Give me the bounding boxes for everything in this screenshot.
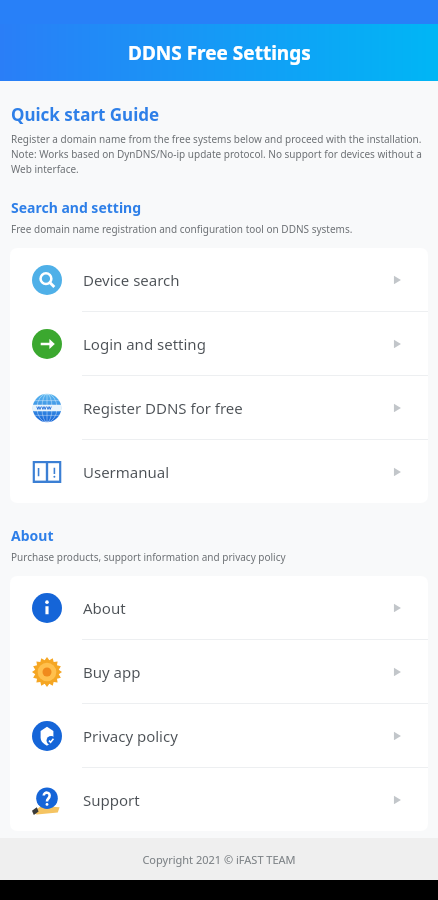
staticText: Support (83, 790, 388, 810)
staticText: Buy app (83, 662, 388, 682)
staticText: Register DDNS for free (83, 398, 388, 418)
button[interactable]: Usermanual (10, 440, 428, 503)
button[interactable]: Device search (10, 248, 428, 311)
staticText: DDNS Free Settings (128, 40, 311, 66)
staticText: Search and setting (11, 198, 142, 217)
staticText: Privacy policy (83, 726, 388, 746)
staticText: Quick start Guide (11, 103, 160, 126)
staticText: Usermanual (83, 462, 388, 482)
staticText: Copyright 2021 © iFAST TEAM (142, 852, 296, 867)
button[interactable]: Login and setting (10, 312, 428, 375)
staticText: Register a domain name from the free sys… (11, 132, 427, 176)
button[interactable]: Buy app (10, 640, 428, 703)
staticText: About (83, 598, 388, 618)
staticText: Login and setting (83, 334, 388, 354)
button[interactable]: Support (10, 768, 428, 831)
button[interactable]: Register DDNS for free (10, 376, 428, 439)
staticText: Free domain name registration and config… (11, 222, 353, 236)
staticText: Purchase products, support information a… (11, 550, 286, 564)
button[interactable]: Privacy policy (10, 704, 428, 767)
staticText: About (11, 526, 54, 545)
staticText: Device search (83, 270, 388, 290)
button[interactable]: About (10, 576, 428, 639)
